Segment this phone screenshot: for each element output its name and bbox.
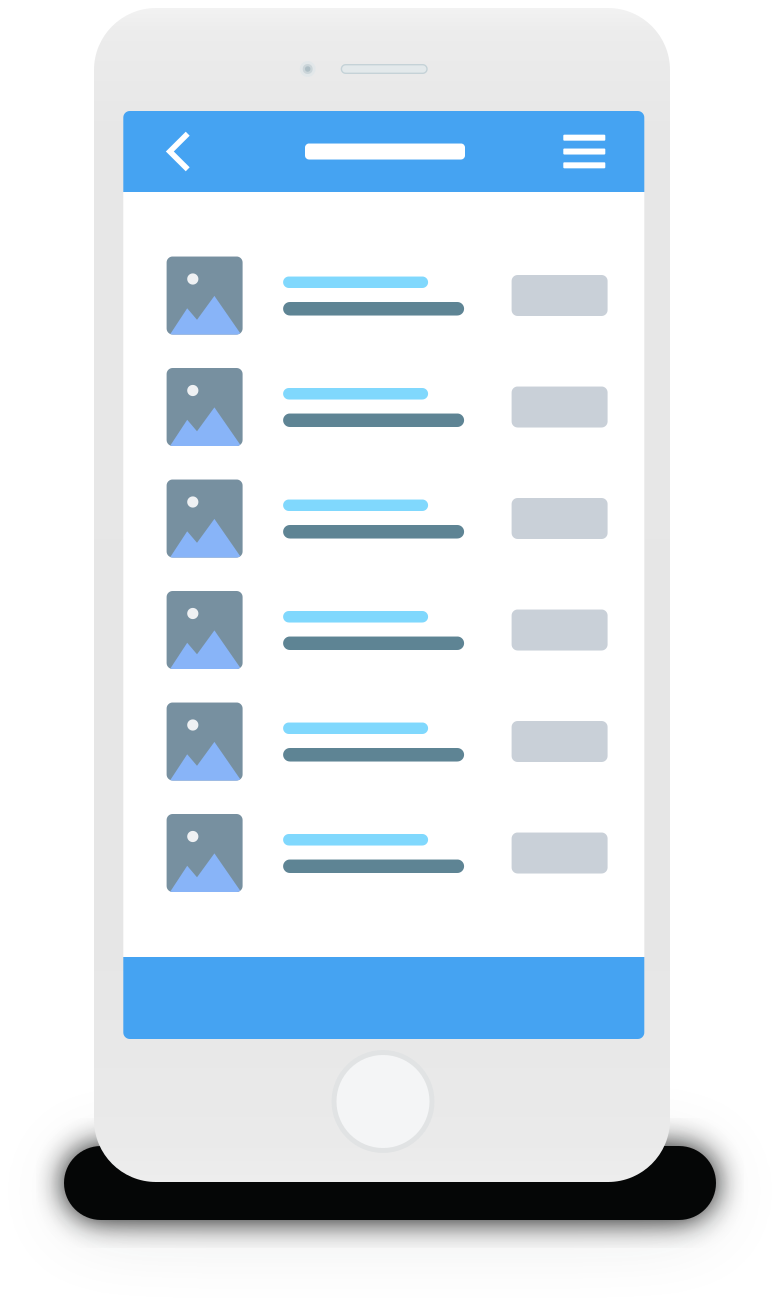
button[interactable] <box>163 256 604 334</box>
button[interactable] <box>163 591 604 669</box>
button[interactable] <box>163 814 604 892</box>
button[interactable] <box>163 702 604 780</box>
button[interactable]: Back <box>123 112 211 191</box>
button[interactable]: Menu <box>541 116 644 187</box>
button[interactable] <box>163 479 604 557</box>
button[interactable] <box>163 368 604 446</box>
